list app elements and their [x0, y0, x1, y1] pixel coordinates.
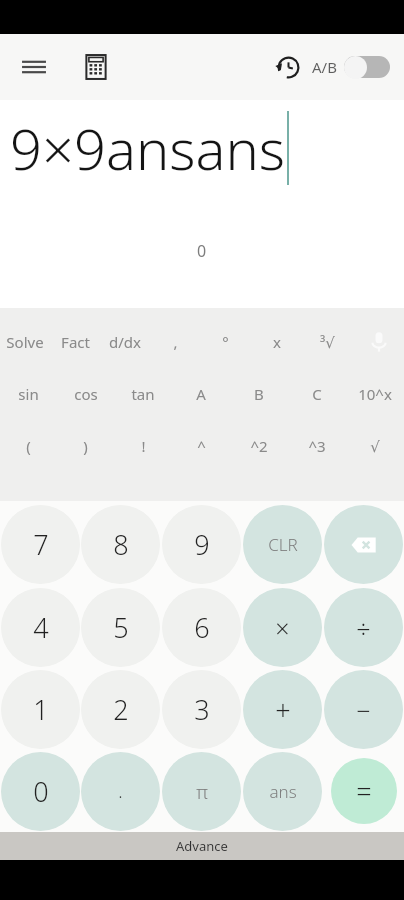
button[interactable]: + — [243, 670, 322, 749]
staticText: × — [275, 611, 290, 645]
staticText: , — [173, 332, 178, 352]
staticText: 0 — [197, 240, 207, 262]
staticText: 1 — [33, 691, 49, 728]
staticText: 8 — [113, 526, 129, 563]
staticText: A — [196, 384, 206, 404]
staticText: C — [312, 384, 322, 404]
button[interactable]: x — [251, 320, 302, 364]
button[interactable]: 3 — [162, 670, 241, 749]
staticText: ) — [83, 436, 88, 456]
staticText: Solve — [6, 332, 44, 352]
button[interactable]: 7 — [1, 505, 80, 584]
button[interactable]: B — [230, 372, 288, 416]
button[interactable]: Calculator mode — [74, 45, 118, 89]
button[interactable]: tan — [114, 372, 172, 416]
staticText: = — [356, 773, 372, 810]
staticText: . — [118, 779, 123, 804]
button[interactable]: A — [172, 372, 230, 416]
staticText: 6 — [194, 609, 210, 646]
button[interactable]: √ — [346, 424, 404, 468]
staticText: CLR — [268, 533, 298, 556]
button[interactable]: Solve — [0, 320, 50, 364]
staticText: ^ — [197, 436, 206, 456]
button[interactable]: π — [162, 752, 241, 831]
button[interactable]: , — [150, 320, 200, 364]
staticText: 5 — [113, 609, 129, 646]
staticText: Advance — [176, 837, 228, 855]
button[interactable]: A/B toggle — [344, 52, 390, 82]
button[interactable]: − — [324, 670, 403, 749]
button[interactable]: History — [268, 47, 308, 87]
staticText: ÷ — [356, 611, 371, 645]
staticText: sin — [18, 384, 39, 404]
staticText: ° — [222, 332, 229, 352]
button[interactable]: ( — [0, 424, 57, 468]
button[interactable]: sin — [0, 372, 57, 416]
button[interactable]: cos — [57, 372, 114, 416]
staticText: ans — [269, 780, 297, 803]
button[interactable]: Menu — [12, 45, 56, 89]
staticText: ( — [26, 436, 31, 456]
staticText: 7 — [33, 526, 49, 563]
staticText: ³√ — [320, 332, 335, 352]
staticText: √ — [370, 438, 380, 455]
button[interactable]: d/dx — [100, 320, 150, 364]
staticText: x — [273, 332, 281, 352]
button[interactable]: = — [331, 758, 397, 824]
staticText: 0 — [33, 773, 49, 810]
staticText: Fact — [61, 332, 90, 352]
staticText: − — [356, 693, 371, 727]
staticText: π — [196, 779, 208, 805]
button[interactable]: ! — [114, 424, 172, 468]
staticText: 4 — [33, 609, 49, 646]
button[interactable]: 9 — [162, 505, 241, 584]
staticText: A/B — [312, 57, 337, 77]
staticText: B — [254, 384, 264, 404]
button[interactable]: 0 — [1, 752, 80, 831]
button[interactable]: Backspace — [324, 505, 403, 584]
button[interactable]: 8 — [81, 505, 160, 584]
button[interactable]: × — [243, 588, 322, 667]
button[interactable]: C — [288, 372, 346, 416]
staticText: d/dx — [109, 332, 141, 352]
button[interactable]: ) — [57, 424, 114, 468]
button[interactable]: ^ — [172, 424, 230, 468]
button[interactable]: Fact — [50, 320, 100, 364]
staticText: 10^x — [358, 384, 392, 404]
button[interactable]: 4 — [1, 588, 80, 667]
staticText: ^2 — [250, 436, 268, 456]
staticText: 3 — [194, 691, 210, 728]
staticText: ! — [141, 436, 146, 456]
staticText: cos — [74, 384, 98, 404]
button[interactable]: 5 — [81, 588, 160, 667]
staticText: 9×9ansans — [10, 110, 286, 186]
button[interactable]: CLR — [243, 505, 322, 584]
button[interactable]: Advance — [0, 832, 404, 860]
button[interactable]: 10^x — [346, 372, 404, 416]
button[interactable]: 1 — [1, 670, 80, 749]
button[interactable]: ^2 — [230, 424, 288, 468]
button[interactable]: 2 — [81, 670, 160, 749]
button[interactable]: 6 — [162, 588, 241, 667]
staticText: 9 — [194, 526, 210, 563]
staticText: ^3 — [308, 436, 326, 456]
button[interactable]: ³√ — [302, 320, 353, 364]
button[interactable]: ^3 — [288, 424, 346, 468]
staticText: + — [275, 691, 291, 728]
staticText: tan — [131, 384, 155, 404]
button[interactable]: . — [81, 752, 160, 831]
button[interactable]: ° — [200, 320, 251, 364]
button[interactable]: ans — [243, 752, 322, 831]
button[interactable]: ÷ — [324, 588, 403, 667]
staticText: 2 — [113, 691, 129, 728]
